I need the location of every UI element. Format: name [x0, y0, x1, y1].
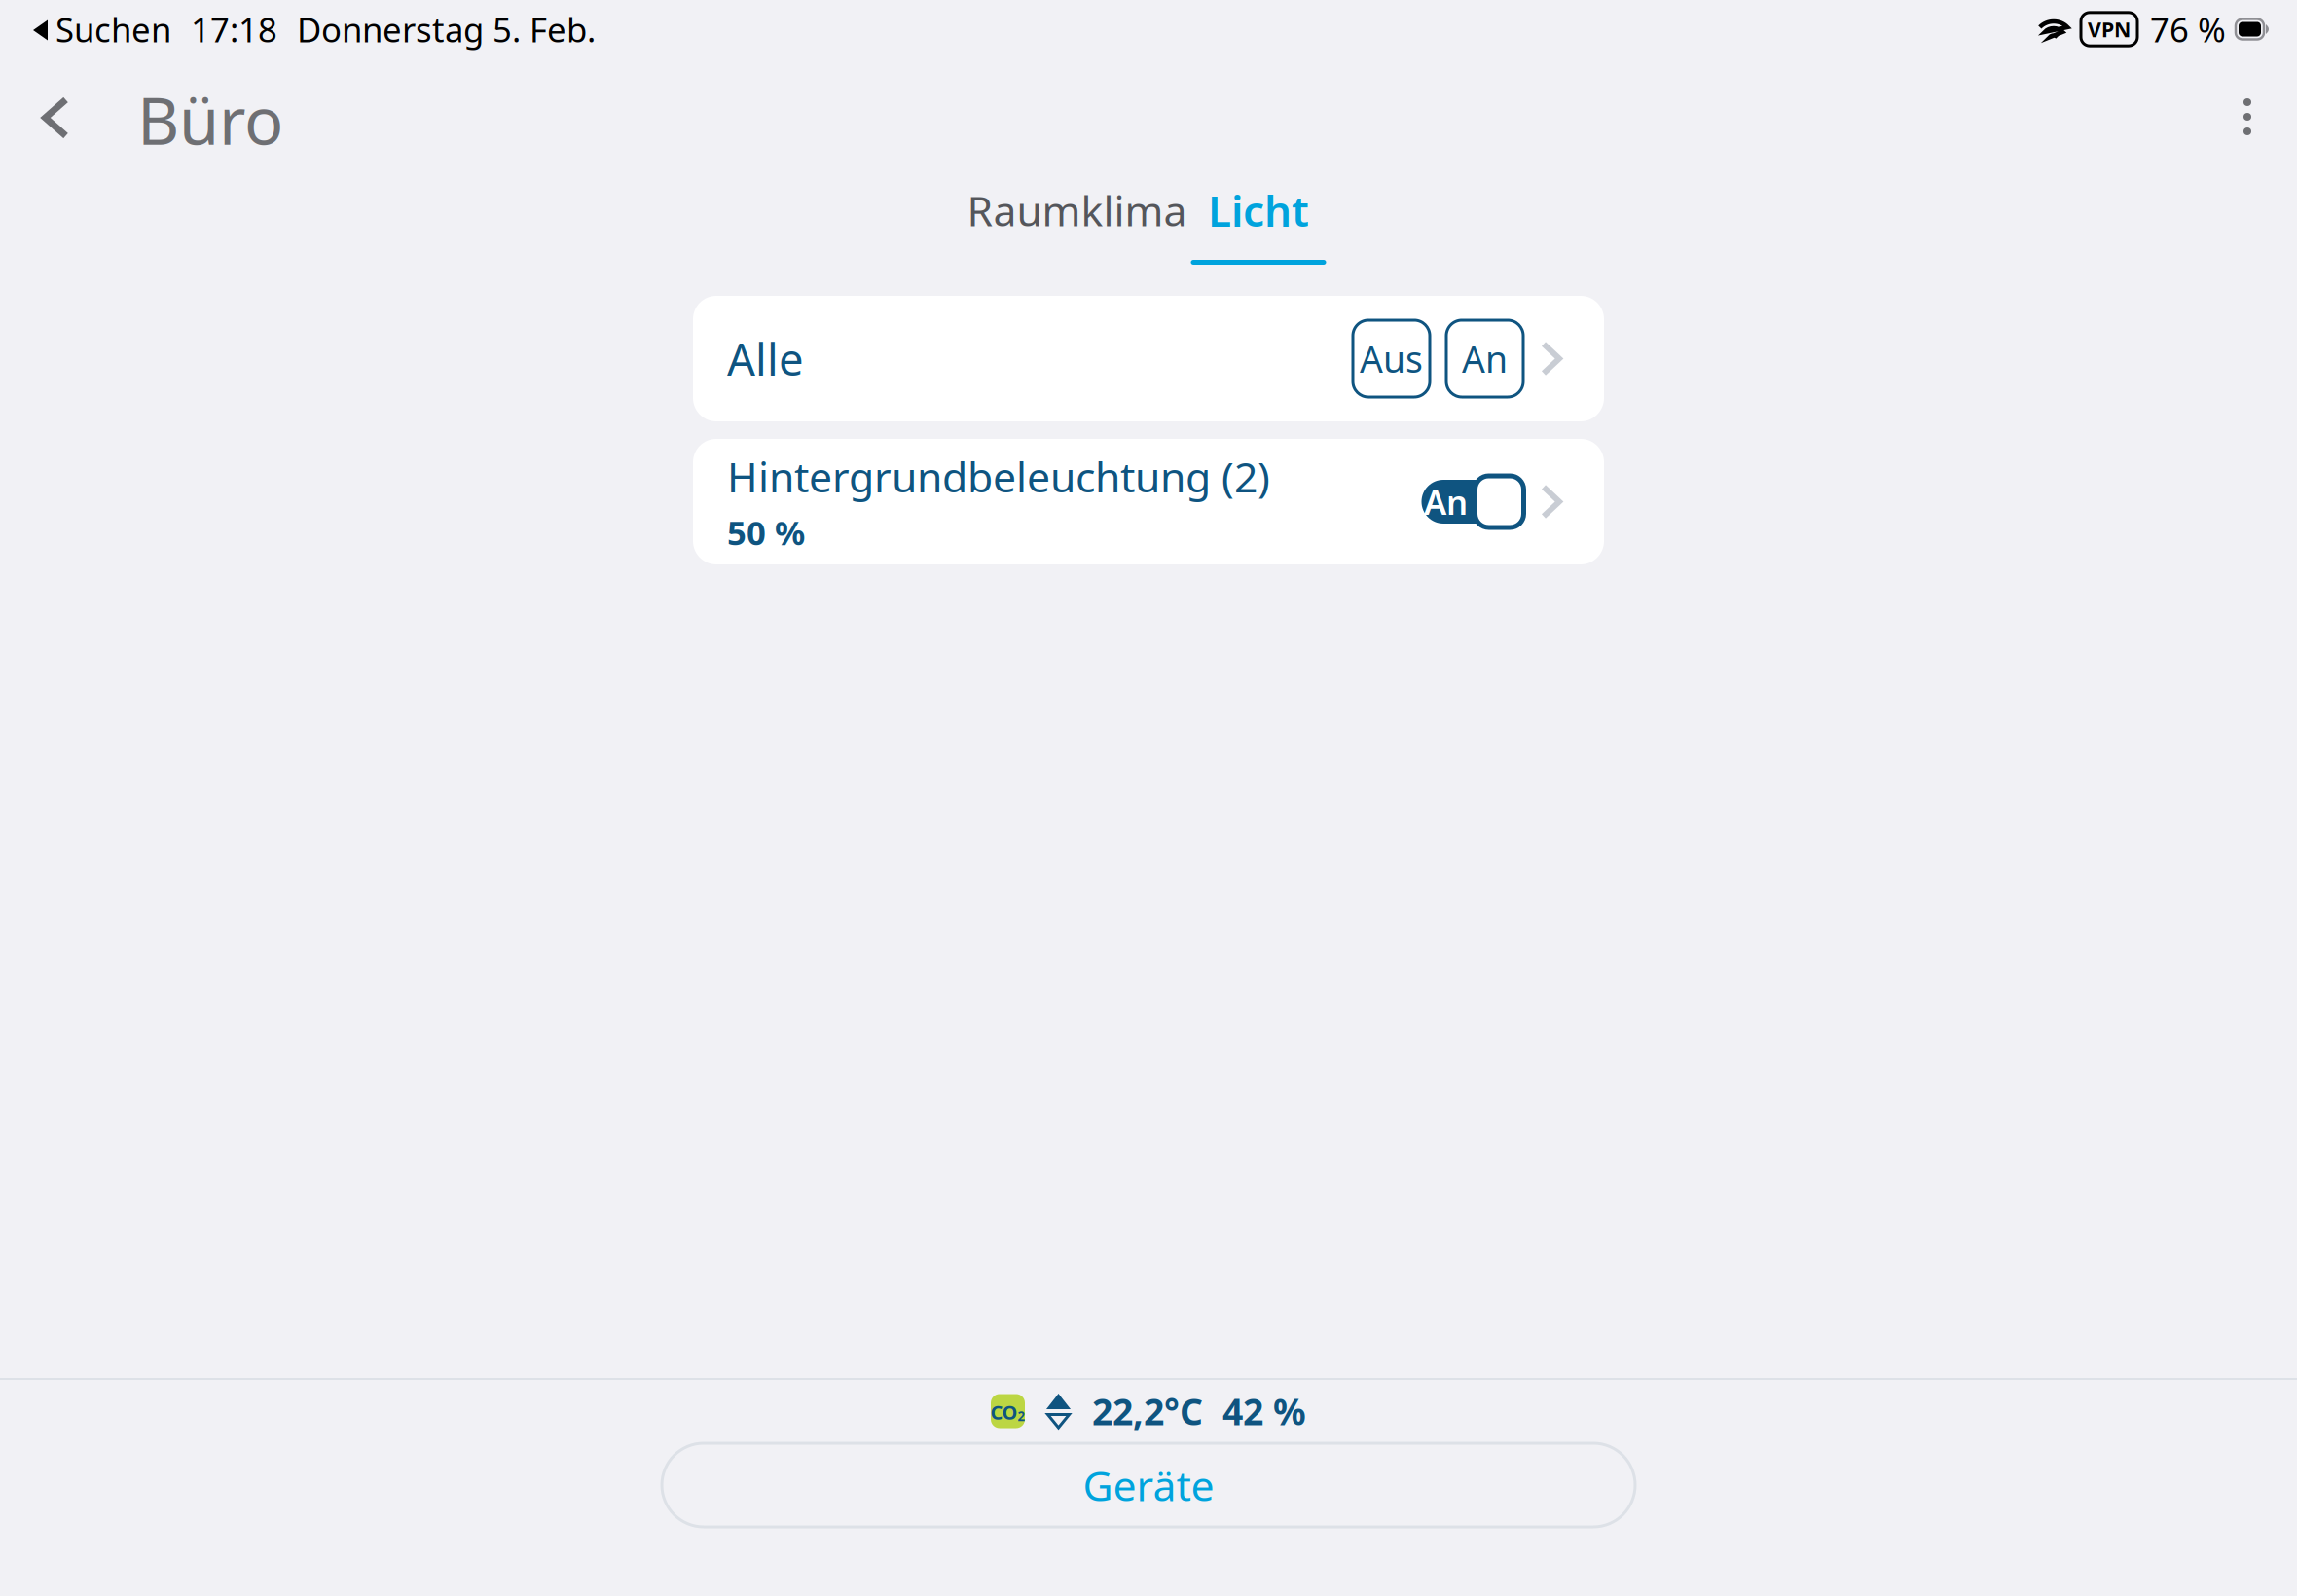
staticText: Raumklima — [967, 183, 1187, 238]
staticText: Alle — [727, 329, 804, 388]
button[interactable]: An — [1446, 320, 1523, 397]
staticText: An — [1462, 334, 1508, 383]
button[interactable]: Hintergrundbeleuchtung (2) — [693, 439, 1604, 564]
button[interactable]: Switch light off — [1412, 476, 1514, 527]
button[interactable]: Raumklima — [971, 190, 1183, 265]
staticText: Donnerstag 5. Feb. — [297, 7, 596, 52]
button[interactable]: Licht — [1191, 190, 1326, 265]
staticText: 76 % — [2150, 7, 2226, 52]
staticText: VPN — [2088, 15, 2131, 43]
button[interactable]: More options — [2219, 58, 2276, 148]
staticText: 42 % — [1222, 1387, 1306, 1435]
staticText: CO — [990, 1399, 1018, 1425]
staticText: 2 — [1018, 1407, 1025, 1425]
button[interactable]: Geräte — [662, 1443, 1635, 1527]
staticText: Aus — [1360, 334, 1423, 383]
button[interactable]: Aus — [1353, 320, 1430, 397]
staticText: 17:18 — [191, 7, 277, 52]
staticText: Büro — [137, 77, 283, 163]
button[interactable]: Büro — [137, 58, 283, 148]
staticText: An — [1424, 479, 1468, 524]
staticText: Licht — [1208, 182, 1309, 239]
staticText: 50 % — [727, 510, 805, 555]
staticText: Hintergrundbeleuchtung (2) — [727, 449, 1270, 504]
staticText: Suchen — [55, 7, 171, 52]
button[interactable]: Back — [23, 58, 88, 148]
button[interactable]: Alle — [693, 296, 1604, 421]
staticText: Geräte — [1083, 1458, 1214, 1513]
staticText: 22,2°C — [1092, 1387, 1203, 1435]
